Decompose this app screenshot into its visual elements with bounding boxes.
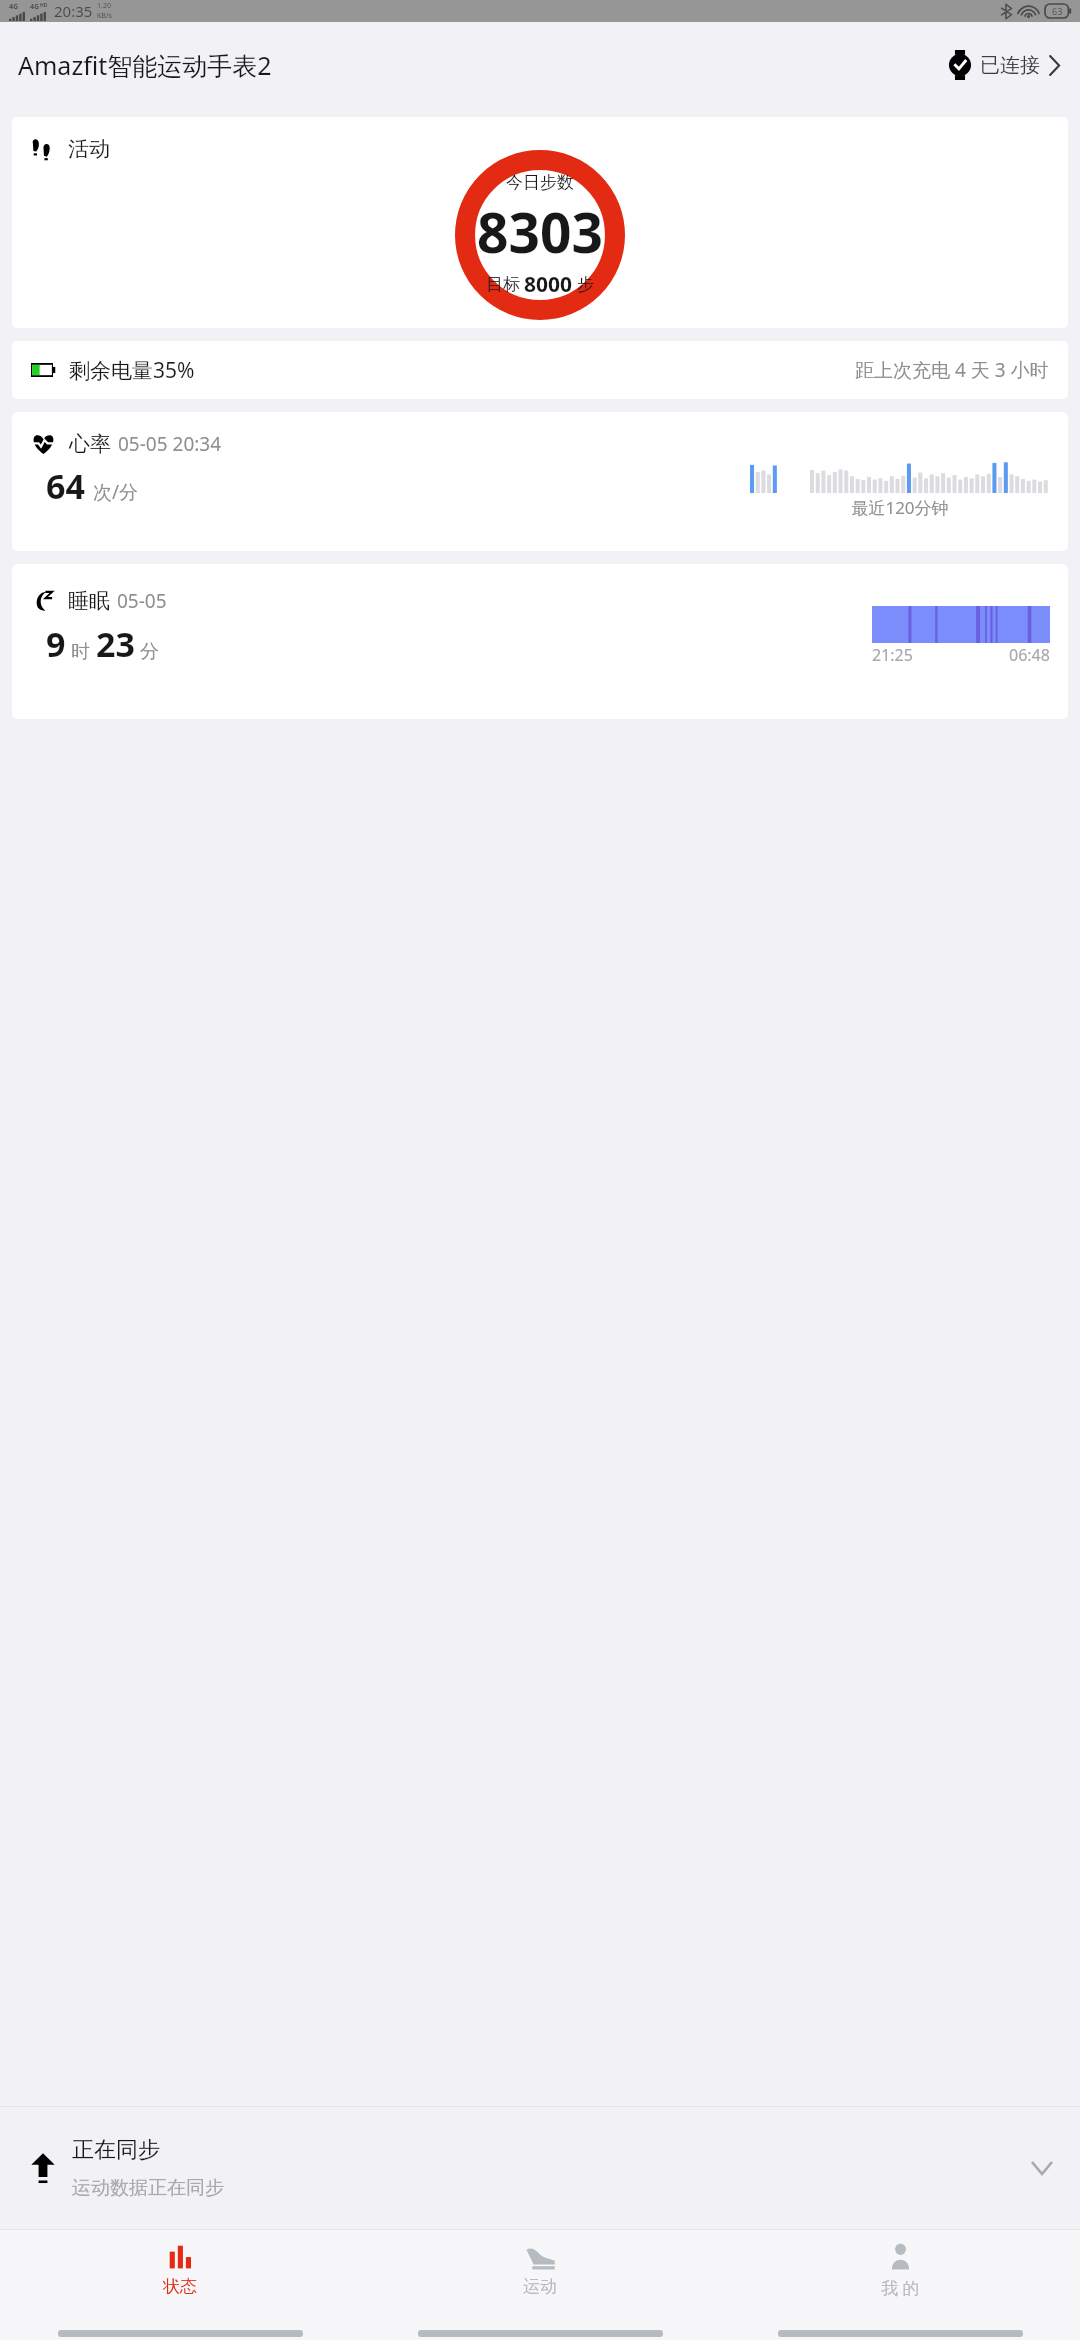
staticText: 05-05 [117,588,167,614]
staticText: Amazfit智能运动手表2 [18,48,272,82]
button[interactable]: 我 的 [720,2230,1080,2326]
button[interactable]: Watch connected [944,46,1064,84]
button[interactable]: 状态 [0,2230,360,2326]
staticText: 已连接 [980,53,1040,78]
staticText: 9 [46,621,66,667]
staticText: 状态 [163,2276,197,2297]
other: Battery [31,363,56,377]
staticText: 运动数据正在同步 [72,2176,224,2200]
other: Heart rate [31,433,56,455]
staticText: 睡眠 [68,588,110,614]
staticText: 4G [9,2,19,12]
staticText: 运动 [523,2276,557,2297]
staticText: KB/s [97,11,112,21]
staticText: 分 [140,640,159,664]
button[interactable]: Heart rate [12,412,1068,551]
other: Activity [31,137,55,161]
staticText: 活动 [68,136,110,162]
staticText: 剩余电量35% [69,356,195,385]
staticText: 正在同步 [72,2136,160,2164]
staticText: 次/分 [93,479,139,505]
button[interactable]: Sleep [12,564,1068,719]
staticText: 8000 [524,270,573,299]
staticText: 1.20 [97,1,111,11]
staticText: 06:48 [1009,644,1050,666]
button[interactable]: Syncing [0,2107,1080,2229]
staticText: 时 [71,640,90,664]
staticText: 最近120分钟 [851,496,949,519]
other: Syncing [30,2152,56,2184]
staticText: 步 [577,274,594,295]
button[interactable]: Activity [12,117,1068,328]
button[interactable]: Battery [12,341,1068,399]
staticText: 今日步数 [506,172,574,193]
staticText: 目标 [486,274,520,295]
staticText: 63 [1052,5,1063,17]
button[interactable]: 运动 [360,2230,720,2326]
staticText: 8303 [477,194,603,269]
staticText: 距上次充电 4 天 3 小时 [855,357,1049,383]
staticText: 4G [30,2,40,12]
staticText: HD [40,2,48,9]
staticText: 23 [96,621,135,667]
staticText: 21:25 [872,644,913,666]
other: Watch connected [948,50,972,80]
staticText: 05-05 20:34 [118,431,222,457]
other: Sleep [31,589,55,613]
staticText: 心率 [69,431,111,457]
staticText: 我 的 [881,2276,920,2299]
staticText: 20:35 [54,1,93,21]
staticText: 64 [46,463,85,509]
other: Collapse [1032,2162,1052,2174]
